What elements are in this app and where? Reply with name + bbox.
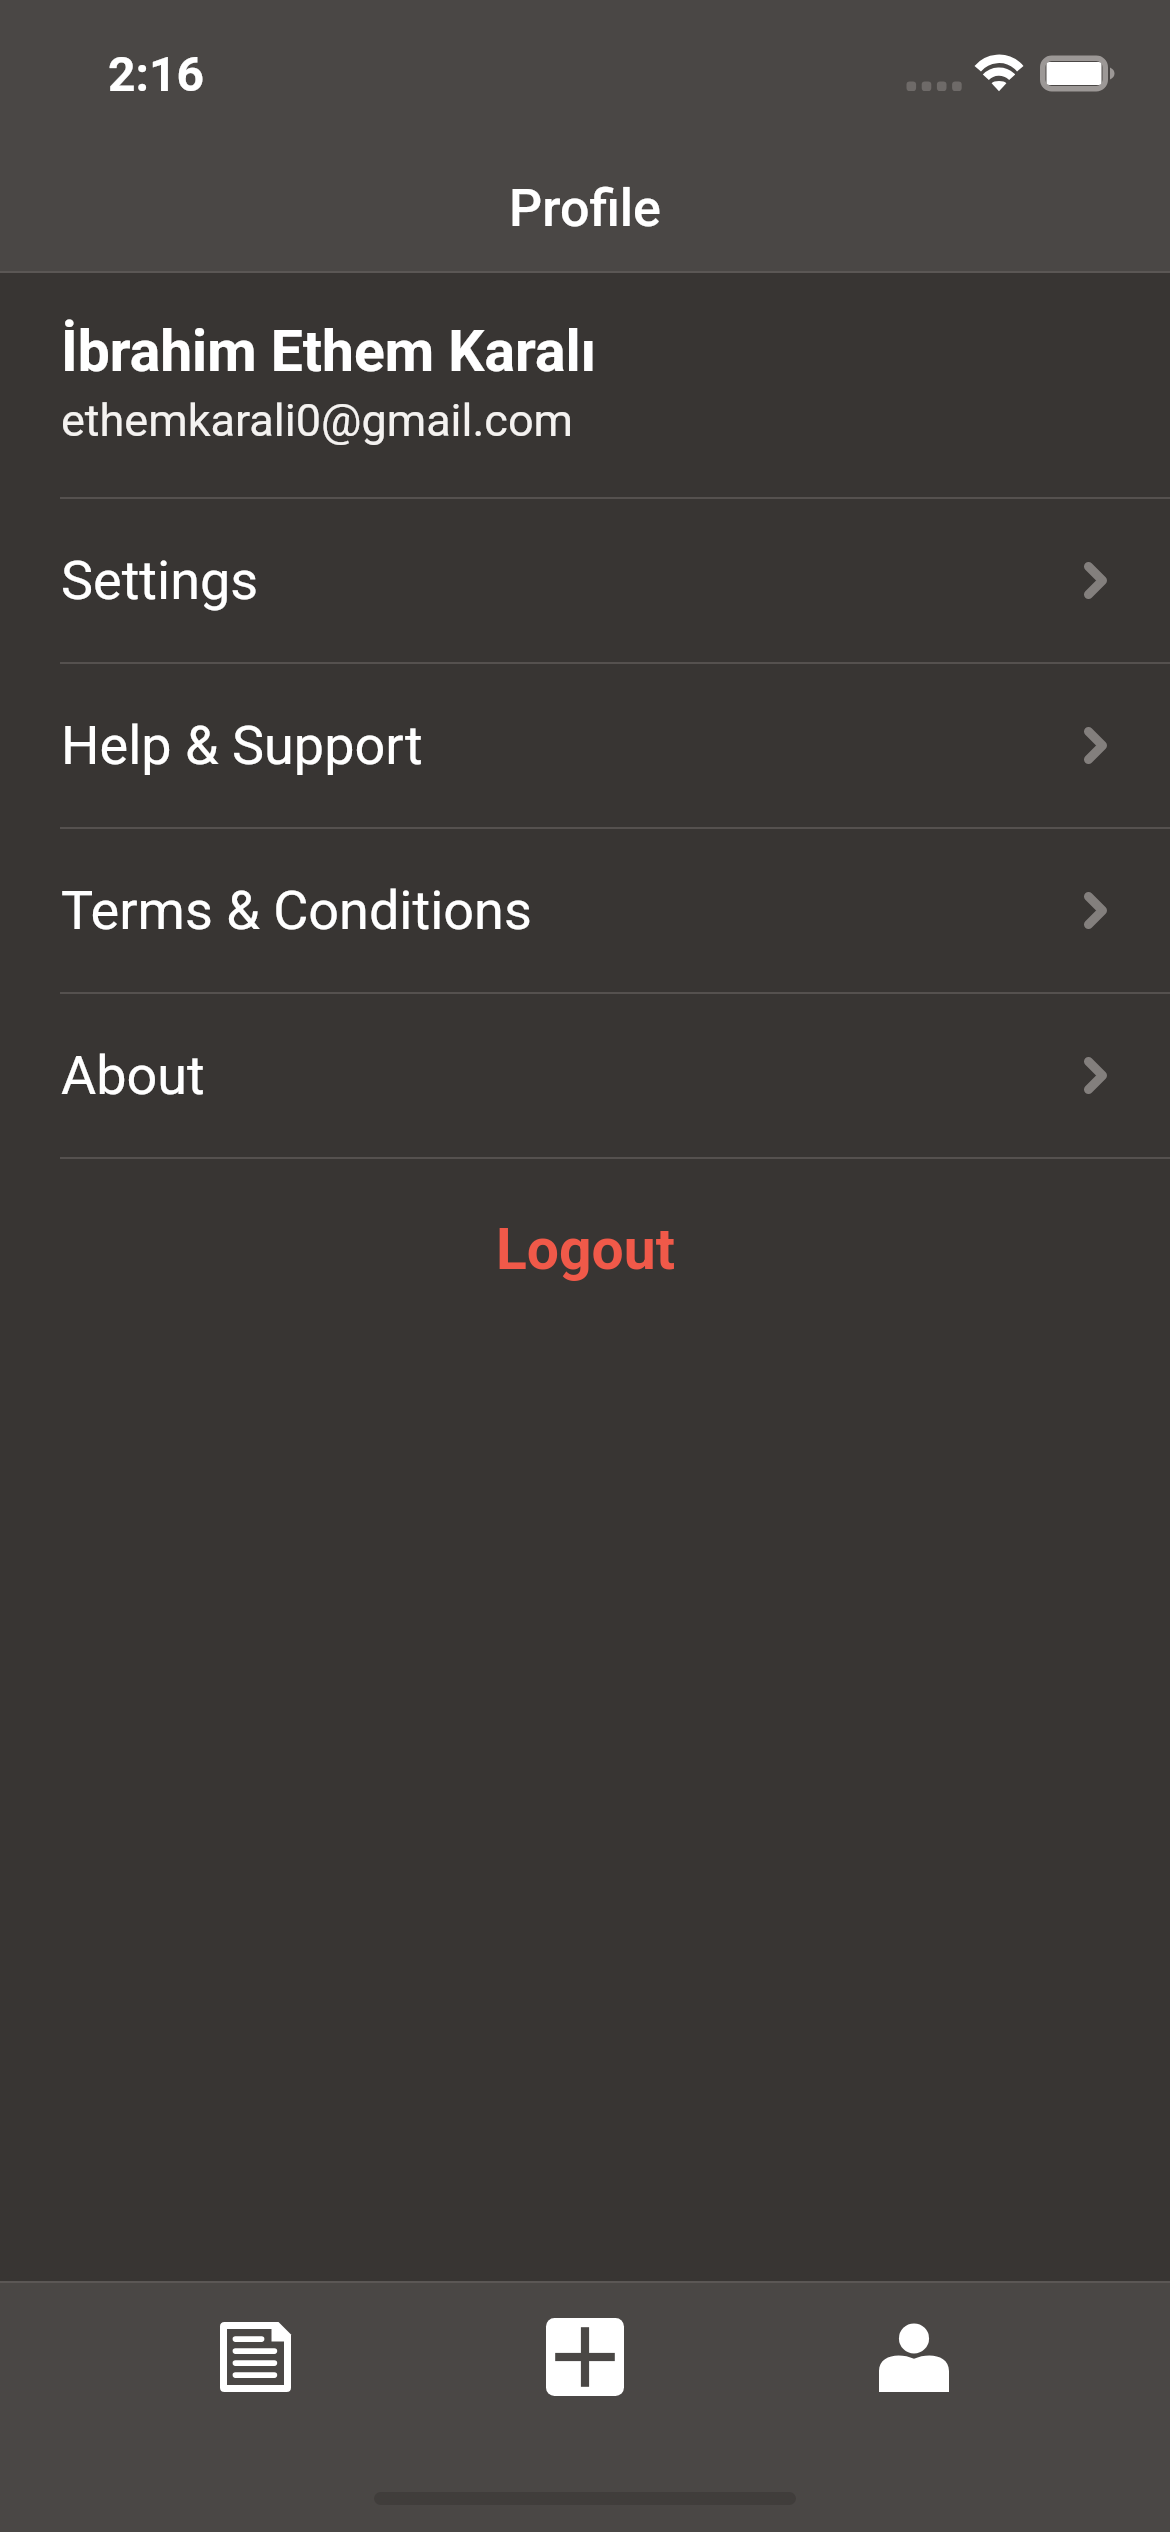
staticText: Help & Support — [61, 714, 423, 777]
staticText: ethemkarali0@gmail.com — [61, 394, 574, 447]
staticText: İbrahim Ethem Karalı — [61, 318, 597, 385]
staticText: 2:16 — [108, 46, 205, 102]
button[interactable]: Logout — [456, 1202, 715, 1297]
button[interactable]: Terms & Conditions — [0, 829, 1170, 992]
staticText: About — [61, 1044, 205, 1107]
button[interactable]: About — [0, 994, 1170, 1157]
button[interactable]: Add new — [520, 2292, 650, 2422]
staticText: Profile — [509, 178, 661, 239]
staticText: Settings — [61, 549, 259, 612]
button[interactable]: Documents — [190, 2292, 320, 2422]
staticText: Logout — [496, 1216, 675, 1283]
button[interactable]: Settings — [0, 499, 1170, 662]
button[interactable]: Help & Support — [0, 664, 1170, 827]
button[interactable]: Profile — [849, 2292, 979, 2422]
staticText: Terms & Conditions — [61, 879, 532, 942]
